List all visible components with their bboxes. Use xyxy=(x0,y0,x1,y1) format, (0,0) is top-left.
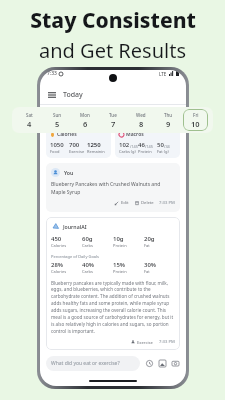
button[interactable]: Gallery xyxy=(157,358,167,368)
staticText: 60g xyxy=(82,235,93,243)
staticText: Exercise xyxy=(69,149,85,154)
staticText: Wed xyxy=(136,112,146,118)
button[interactable]: Edit xyxy=(114,199,130,207)
staticText: Percentage of Daily Goals xyxy=(51,254,100,259)
button[interactable]: Fri xyxy=(183,109,208,131)
button[interactable]: Exercise xyxy=(130,339,154,345)
staticText: Thu xyxy=(164,112,173,118)
staticText: 10g xyxy=(113,235,124,243)
button[interactable]: JournalAI xyxy=(46,217,180,350)
staticText: 7:33 PM xyxy=(159,200,175,206)
staticText: Carbs (g) xyxy=(119,149,136,154)
staticText: Sat xyxy=(26,112,33,118)
button[interactable]: What did you eat or exercise? xyxy=(46,356,140,371)
staticText: 1250 xyxy=(87,141,101,149)
staticText: What did you eat or exercise? xyxy=(51,360,120,367)
staticText: 20g xyxy=(144,235,155,243)
button[interactable]: Delete xyxy=(134,199,155,207)
staticText: 46 xyxy=(138,141,145,149)
staticText: Remaining xyxy=(87,149,107,154)
staticText: Fat (g) xyxy=(157,149,169,154)
staticText: 700 xyxy=(69,141,80,149)
staticText: Calories xyxy=(51,243,67,248)
staticText: 50 xyxy=(157,141,164,149)
staticText: 7 xyxy=(111,119,116,129)
staticText: Macros xyxy=(126,131,144,138)
staticText: Delete xyxy=(141,200,154,206)
staticText: 6 xyxy=(83,119,88,129)
staticText: 28% xyxy=(51,261,64,269)
staticText: /34 xyxy=(164,144,170,149)
staticText: Protein xyxy=(113,269,127,274)
button[interactable]: You xyxy=(46,163,180,212)
staticText: Edit xyxy=(121,200,129,206)
staticText: JournalAI xyxy=(63,223,87,230)
staticText: Calories xyxy=(57,131,77,138)
button[interactable]: Calories xyxy=(46,127,111,158)
staticText: 450 xyxy=(51,235,62,243)
staticText: Tue xyxy=(109,112,117,118)
staticText: Sun xyxy=(53,112,62,118)
staticText: Mon xyxy=(80,112,90,118)
staticText: Carbs xyxy=(82,243,93,248)
staticText: Blueberry pancakes are typically made wi… xyxy=(51,280,175,335)
staticText: Food xyxy=(50,149,60,154)
button[interactable]: Camera xyxy=(170,358,180,368)
button[interactable]: Sun xyxy=(45,109,70,131)
staticText: 15% xyxy=(113,261,126,269)
staticText: Blueberry Pancakes with Crushed Walnuts … xyxy=(51,181,175,195)
staticText: 4 xyxy=(27,119,32,129)
staticText: Fat xyxy=(144,269,150,274)
staticText: Today xyxy=(63,90,83,100)
button[interactable]: Mon xyxy=(72,109,97,131)
staticText: 102 xyxy=(119,141,130,149)
staticText: and Get Results xyxy=(39,37,186,64)
staticText: Protein xyxy=(113,243,127,248)
staticText: Carbs xyxy=(82,269,93,274)
button[interactable]: Thu xyxy=(156,109,181,131)
staticText: Protein (g) xyxy=(138,149,157,154)
staticText: Calories xyxy=(51,269,67,274)
staticText: /145 xyxy=(130,144,138,149)
staticText: 8 xyxy=(139,119,144,129)
staticText: 30% xyxy=(144,261,157,269)
staticText: 7:33 PM xyxy=(159,339,175,345)
staticText: 7:33 xyxy=(47,70,57,77)
button[interactable]: Macros xyxy=(115,127,180,158)
staticText: Exercise xyxy=(137,340,153,344)
staticText: 9 xyxy=(166,119,171,129)
staticText: /145 xyxy=(145,144,153,149)
staticText: 1050 xyxy=(50,141,64,149)
button[interactable]: Tue xyxy=(100,109,125,131)
staticText: You xyxy=(64,169,74,176)
staticText: Fri xyxy=(193,112,199,118)
staticText: LTE xyxy=(159,71,167,77)
button[interactable]: Menu xyxy=(47,90,57,100)
button[interactable]: Sat xyxy=(17,109,42,131)
staticText: 5 xyxy=(55,119,60,129)
staticText: Stay Consistent xyxy=(30,6,196,35)
button[interactable]: Wed xyxy=(128,109,153,131)
staticText: 10 xyxy=(191,119,200,129)
staticText: Fat xyxy=(144,243,150,248)
staticText: 40% xyxy=(82,261,95,269)
button[interactable]: Voice input xyxy=(144,358,154,368)
